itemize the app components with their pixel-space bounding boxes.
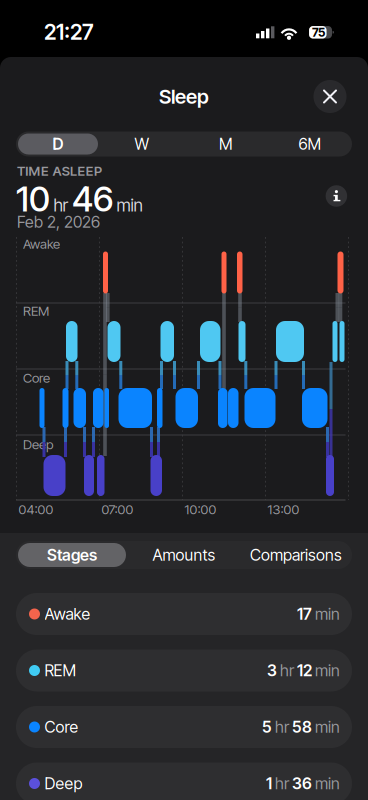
staticText: 21:27 <box>44 19 94 45</box>
staticText: REM <box>44 661 76 680</box>
staticText: 5 <box>262 718 272 736</box>
staticText: Stages <box>47 546 97 564</box>
staticText: 1 <box>266 774 272 793</box>
staticText: D <box>52 135 63 153</box>
staticText: M <box>219 135 233 153</box>
staticText: Comparisons <box>250 546 342 564</box>
staticText: 36 <box>292 774 312 793</box>
staticText: Deep <box>23 437 53 452</box>
staticText: min <box>315 605 340 623</box>
staticText: TIME ASLEEP <box>17 163 102 179</box>
staticText: min <box>315 661 340 680</box>
staticText: Awake <box>23 236 60 252</box>
staticText: Awake <box>44 605 90 623</box>
staticText: Feb 2, 2026 <box>17 213 100 231</box>
staticText: W <box>134 135 149 153</box>
staticText: 13:00 <box>267 502 299 517</box>
button[interactable]: Stages <box>16 541 128 569</box>
staticText: hr <box>280 661 294 680</box>
staticText: 07:00 <box>101 502 133 517</box>
button[interactable]: M <box>184 131 268 156</box>
button[interactable]: W <box>100 131 184 156</box>
staticText: 10:00 <box>184 502 216 517</box>
staticText: 04:00 <box>18 502 53 517</box>
staticText: 75 <box>312 25 325 40</box>
staticText: hr <box>53 195 68 215</box>
staticText: Sleep <box>159 85 209 108</box>
staticText: Amounts <box>152 546 215 564</box>
staticText: Core <box>44 718 78 736</box>
staticText: Core <box>23 370 50 386</box>
button[interactable]: Info <box>326 185 347 207</box>
button[interactable]: Close <box>313 80 346 113</box>
staticText: 10 <box>16 179 50 219</box>
staticText: min <box>315 774 340 793</box>
button[interactable]: Comparisons <box>240 541 352 569</box>
button[interactable]: D <box>16 131 100 156</box>
staticText: 58 <box>292 718 312 736</box>
staticText: 17 <box>297 605 312 623</box>
staticText: Deep <box>44 774 82 793</box>
staticText: 46 <box>72 179 113 219</box>
button[interactable]: 6M <box>268 131 352 156</box>
staticText: min <box>315 718 340 736</box>
staticText: min <box>116 195 142 215</box>
button[interactable]: Amounts <box>128 541 240 569</box>
staticText: hr <box>275 718 289 736</box>
staticText: 3 <box>267 661 277 680</box>
staticText: 12 <box>297 661 312 680</box>
staticText: hr <box>275 774 289 793</box>
staticText: REM <box>23 303 49 319</box>
staticText: 6M <box>298 135 321 153</box>
